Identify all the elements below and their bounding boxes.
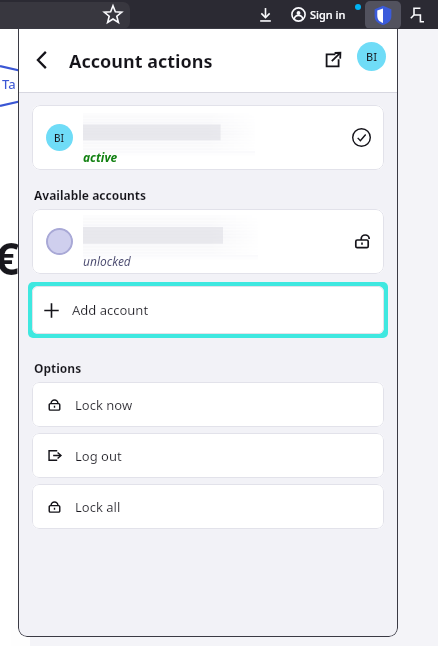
button[interactable]: Profile: [357, 42, 386, 71]
staticText: €: [0, 228, 20, 288]
button[interactable]: Open in new window: [323, 50, 343, 70]
staticText: BI: [366, 49, 378, 64]
staticText: Options: [34, 360, 82, 376]
staticText: Ta: [2, 75, 16, 93]
staticText: Available accounts: [34, 187, 147, 203]
staticText: Sign in: [310, 7, 346, 22]
button[interactable]: Sign in: [288, 3, 349, 26]
button[interactable]: Lock all: [32, 484, 384, 529]
staticText: active: [83, 149, 118, 165]
button[interactable]: Back: [30, 48, 54, 72]
staticText: Lock all: [75, 498, 121, 516]
staticText: Add account: [72, 301, 149, 319]
button[interactable]: Bookmark: [103, 5, 123, 25]
button[interactable]: BI: [32, 105, 384, 170]
button[interactable]: unlocked: [32, 209, 384, 274]
button[interactable]: Account actions extension: [372, 4, 394, 26]
button[interactable]: Extensions: [408, 5, 428, 25]
staticText: Log out: [75, 447, 122, 465]
staticText: unlocked: [83, 253, 131, 269]
button[interactable]: Add account: [32, 286, 384, 334]
button[interactable]: Lock now: [32, 382, 384, 427]
staticText: Lock now: [75, 396, 133, 414]
staticText: BI: [54, 131, 65, 145]
button[interactable]: Log out: [32, 433, 384, 478]
button[interactable]: Downloads: [256, 5, 275, 24]
staticText: Account actions: [69, 49, 213, 74]
